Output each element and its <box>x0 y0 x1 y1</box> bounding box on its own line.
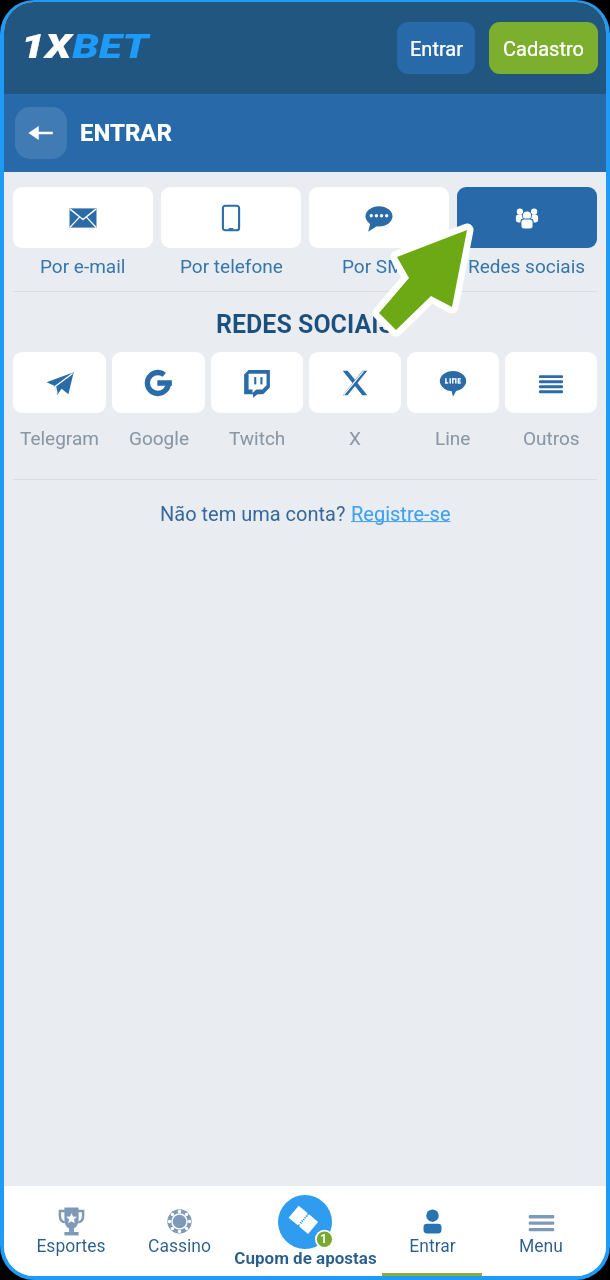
staticText: Redes sociais <box>468 255 586 277</box>
staticText: Menu <box>519 1236 563 1257</box>
staticText: 1X <box>21 26 72 66</box>
staticText: Entrar <box>410 37 463 60</box>
staticText: 1 <box>320 1231 328 1246</box>
staticText: Google <box>129 427 189 449</box>
button[interactable]: Outros <box>505 352 597 449</box>
button[interactable]: Redes sociais <box>457 187 597 277</box>
button[interactable]: Back <box>15 107 67 159</box>
button[interactable]: Por SMS <box>309 187 449 277</box>
button[interactable]: Telegram <box>13 352 106 449</box>
button[interactable]: Cassino <box>124 1186 234 1276</box>
staticText: Por telefone <box>180 255 283 277</box>
staticText: BET <box>72 26 149 66</box>
button[interactable]: Esportes <box>16 1186 126 1276</box>
staticText: Entrar <box>409 1236 456 1257</box>
button[interactable]: Cadastro <box>489 22 598 74</box>
button[interactable]: Entrar <box>377 1186 487 1276</box>
staticText: Outros <box>523 427 580 449</box>
button[interactable]: Por e-mail <box>13 187 153 277</box>
staticText: Não tem uma conta? <box>160 502 351 525</box>
staticText: Twitch <box>229 427 286 449</box>
staticText: Por SMS <box>342 255 416 277</box>
staticText: REDES SOCIAIS <box>4 310 606 339</box>
button[interactable]: X <box>309 352 401 449</box>
button[interactable]: Twitch <box>211 352 303 449</box>
staticText: Esportes <box>36 1236 106 1257</box>
button[interactable]: Por telefone <box>161 187 301 277</box>
staticText: Cassino <box>148 1236 211 1257</box>
staticText: Cadastro <box>503 37 584 60</box>
button[interactable]: Menu <box>486 1186 596 1276</box>
button[interactable]: Registre-se <box>351 502 451 525</box>
button[interactable]: Google <box>112 352 205 449</box>
staticText: ENTRAR <box>80 119 172 147</box>
button[interactable]: Line <box>407 352 499 449</box>
staticText: Cupom de apostas <box>234 1248 377 1268</box>
staticText: X <box>349 427 361 449</box>
staticText: Por e-mail <box>40 255 126 277</box>
button[interactable]: 1 <box>230 1186 380 1276</box>
staticText: Telegram <box>20 427 99 449</box>
button[interactable]: Entrar <box>397 22 475 74</box>
staticText: Line <box>435 427 471 449</box>
